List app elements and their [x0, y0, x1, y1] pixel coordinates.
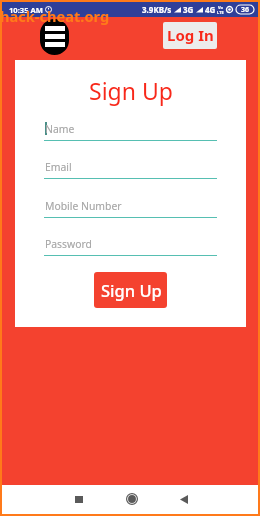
button[interactable]: Back	[176, 491, 192, 507]
staticText: Mobile Number	[45, 199, 122, 213]
staticText: 3G	[183, 4, 194, 15]
staticText: Vo	[218, 5, 224, 10]
button[interactable]: Recents	[71, 491, 87, 507]
staticText: 4G	[205, 4, 216, 15]
staticText: LTE	[217, 10, 224, 15]
button[interactable]: Password	[44, 235, 217, 256]
button[interactable]: Menu	[40, 19, 69, 55]
button[interactable]: Home	[124, 491, 140, 507]
staticText: Sign Up	[89, 75, 173, 106]
button[interactable]: Name	[44, 120, 217, 141]
button[interactable]: Sign Up	[94, 272, 167, 308]
staticText: Log In	[167, 25, 214, 45]
staticText: 10:35 AM	[9, 5, 43, 15]
staticText: Email	[45, 160, 72, 174]
staticText: 36	[241, 5, 250, 14]
button[interactable]: Email	[44, 158, 217, 179]
staticText: hack-cheat.org	[0, 6, 110, 26]
button[interactable]: Log In	[163, 22, 217, 49]
staticText: Sign Up	[101, 279, 162, 301]
staticText: 3.9KB/s	[142, 4, 172, 15]
button[interactable]: Mobile Number	[44, 197, 217, 218]
staticText: Password	[45, 237, 92, 251]
staticText: Name	[45, 122, 75, 136]
